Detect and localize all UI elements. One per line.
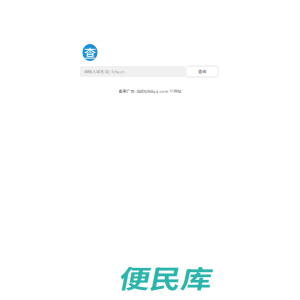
staticText: 查询 [198,68,206,75]
button[interactable]: 便民库 首页 [82,43,98,61]
staticText: 备案广告: 4449()364qq.com © 网址 [118,88,181,94]
staticText: 请输入域名 如: 7cha.cn [84,69,124,74]
button[interactable]: 请输入域名 如: 7cha.cn [80,66,185,77]
staticText: 查 [84,44,96,61]
staticText: 便民库 [123,259,219,300]
button[interactable]: 查询 [186,66,218,77]
